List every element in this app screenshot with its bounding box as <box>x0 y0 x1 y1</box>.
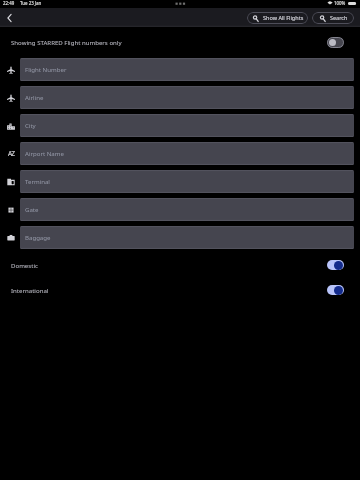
staticText: Gate <box>25 205 39 213</box>
button[interactable]: Show starred flight numbers only <box>327 37 344 48</box>
staticText: Showing STARRED Flight numbers only <box>11 38 122 46</box>
staticText: Baggage <box>25 233 51 241</box>
staticText: Domestic <box>11 261 38 269</box>
button[interactable]: International <box>11 277 344 302</box>
button[interactable]: Baggage <box>20 226 354 249</box>
button[interactable]: Flight Number <box>20 58 354 81</box>
button[interactable]: Back <box>0 8 18 27</box>
button[interactable]: Gate <box>20 198 354 221</box>
staticText: 22:49 <box>3 0 15 6</box>
staticText: 100% <box>334 0 346 6</box>
staticText: City <box>25 121 36 129</box>
button[interactable]: Airport Name <box>20 142 354 165</box>
button[interactable]: Domestic <box>11 252 344 277</box>
staticText: Airline <box>25 93 44 101</box>
button[interactable]: Airline <box>20 86 354 109</box>
staticText: Airport Name <box>25 149 64 157</box>
button[interactable]: Show All Flights <box>247 12 308 24</box>
staticText: International <box>11 286 49 294</box>
staticText: Show All Flights <box>263 14 304 21</box>
button[interactable]: Search <box>312 12 354 24</box>
button[interactable]: Terminal <box>20 170 354 193</box>
staticText: Tue 23 Jan <box>20 0 42 6</box>
staticText: Terminal <box>25 177 50 185</box>
button[interactable]: City <box>20 114 354 137</box>
staticText: Search <box>330 14 348 21</box>
staticText: AZ <box>8 149 15 157</box>
staticText: Flight Number <box>25 65 67 73</box>
